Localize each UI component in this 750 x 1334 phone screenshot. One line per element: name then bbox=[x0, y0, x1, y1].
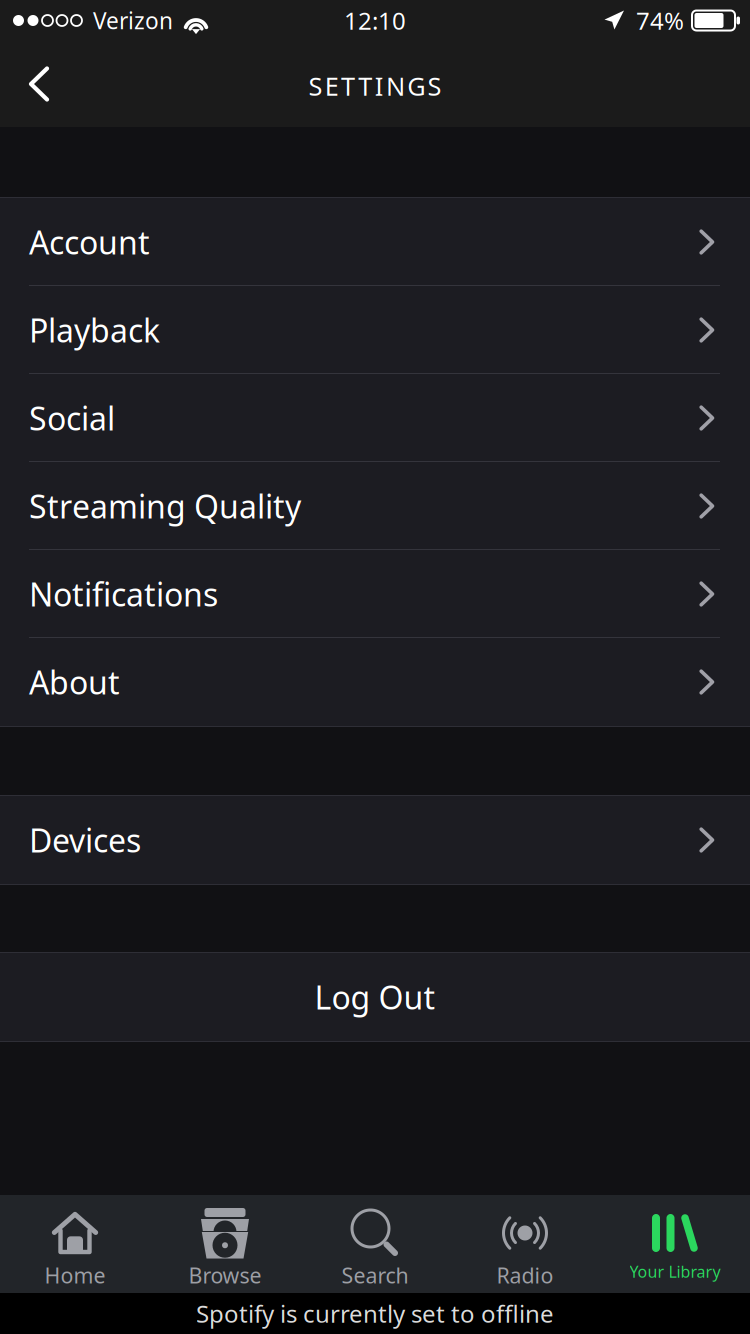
button[interactable]: About bbox=[0, 638, 750, 726]
staticText: Account bbox=[29, 221, 150, 263]
staticText: Radio bbox=[496, 1261, 553, 1289]
button[interactable]: Notifications bbox=[0, 550, 750, 638]
staticText: Home bbox=[44, 1261, 105, 1289]
staticText: Verizon bbox=[93, 5, 173, 35]
staticText: Log Out bbox=[314, 976, 435, 1018]
button[interactable]: Your Library bbox=[600, 1195, 750, 1293]
button[interactable]: Devices bbox=[0, 796, 750, 884]
staticText: Notifications bbox=[29, 573, 218, 615]
staticText: Search bbox=[341, 1261, 408, 1289]
button[interactable]: Home bbox=[0, 1195, 150, 1293]
staticText: 74% bbox=[636, 5, 684, 36]
staticText: Streaming Quality bbox=[29, 485, 301, 527]
button[interactable]: Back bbox=[0, 50, 66, 117]
button[interactable]: Social bbox=[0, 374, 750, 462]
staticText: 12:10 bbox=[344, 5, 406, 36]
button[interactable]: Log Out bbox=[0, 953, 750, 1041]
button[interactable]: Playback bbox=[0, 286, 750, 374]
button[interactable]: Browse bbox=[150, 1195, 300, 1293]
staticText: Browse bbox=[188, 1261, 261, 1289]
staticText: Your Library bbox=[629, 1261, 720, 1282]
button[interactable]: Radio bbox=[450, 1195, 600, 1293]
button[interactable]: Search bbox=[300, 1195, 450, 1293]
staticText: Playback bbox=[29, 309, 160, 351]
staticText: Spotify is currently set to offline bbox=[196, 1298, 554, 1329]
staticText: About bbox=[29, 661, 120, 703]
staticText: Devices bbox=[29, 819, 141, 861]
button[interactable]: Streaming Quality bbox=[0, 462, 750, 550]
staticText: SETTINGS bbox=[308, 69, 442, 103]
button[interactable]: Account bbox=[0, 198, 750, 286]
staticText: Social bbox=[29, 397, 115, 439]
